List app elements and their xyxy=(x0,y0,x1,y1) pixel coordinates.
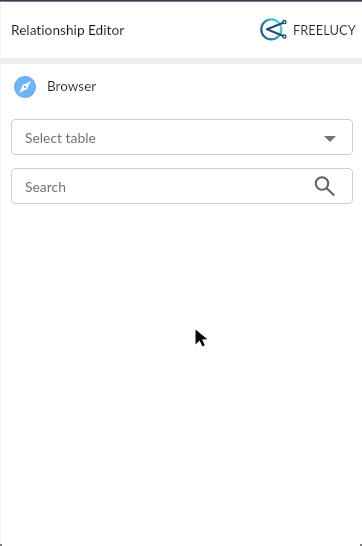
staticText: Select table xyxy=(25,129,96,146)
other: Open table list xyxy=(324,136,336,142)
other: Search xyxy=(311,172,337,198)
button[interactable]: Select table xyxy=(11,119,353,155)
button[interactable]: Browser xyxy=(0,64,362,109)
other: Browser xyxy=(14,76,36,98)
staticText: Relationship Editor xyxy=(11,22,125,38)
staticText: FREELUCY xyxy=(293,22,356,37)
other: FreeLucy logo xyxy=(256,14,290,44)
staticText: Search xyxy=(25,178,66,195)
button[interactable]: Search xyxy=(11,168,353,204)
staticText: Browser xyxy=(47,78,97,94)
